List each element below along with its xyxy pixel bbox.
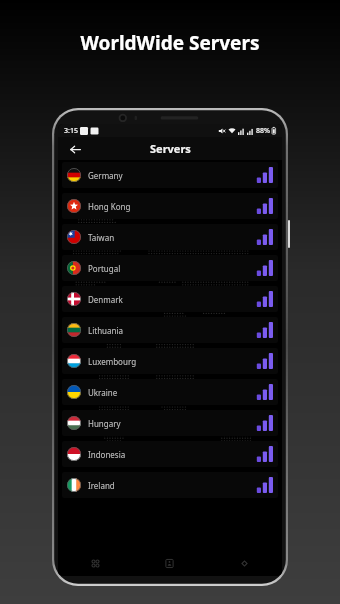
staticText: Lithuania — [88, 325, 124, 336]
button[interactable]: Denmark — [62, 286, 278, 312]
staticText: Hong Kong — [88, 201, 131, 212]
button[interactable]: Indonesia — [62, 441, 278, 467]
staticText: Germany — [88, 170, 123, 181]
button[interactable]: Recents — [58, 550, 132, 576]
staticText: Ukraine — [88, 387, 118, 398]
staticText: 88% — [256, 126, 270, 136]
button[interactable]: Ireland — [62, 472, 278, 498]
button[interactable]: Portugal — [62, 255, 278, 281]
staticText: Luxembourg — [88, 356, 137, 367]
staticText: Hungary — [88, 418, 121, 429]
staticText: Indonesia — [88, 449, 126, 460]
button[interactable]: Germany — [62, 162, 278, 188]
button[interactable]: Back — [207, 550, 282, 576]
button[interactable]: Lithuania — [62, 317, 278, 343]
button[interactable]: Home — [132, 550, 207, 576]
staticText: WorldWide Servers — [0, 30, 340, 56]
button[interactable]: Taiwan — [62, 224, 278, 250]
staticText: Ireland — [88, 480, 115, 491]
button[interactable]: Ukraine — [62, 379, 278, 405]
button[interactable]: Back — [66, 140, 84, 158]
staticText: 3:15 — [64, 126, 78, 136]
button[interactable]: Luxembourg — [62, 348, 278, 374]
button[interactable]: Hong Kong — [62, 193, 278, 219]
staticText: Portugal — [88, 263, 121, 274]
staticText: Taiwan — [88, 232, 115, 243]
staticText: Denmark — [88, 294, 123, 305]
staticText: Servers — [150, 141, 191, 156]
button[interactable]: Hungary — [62, 410, 278, 436]
